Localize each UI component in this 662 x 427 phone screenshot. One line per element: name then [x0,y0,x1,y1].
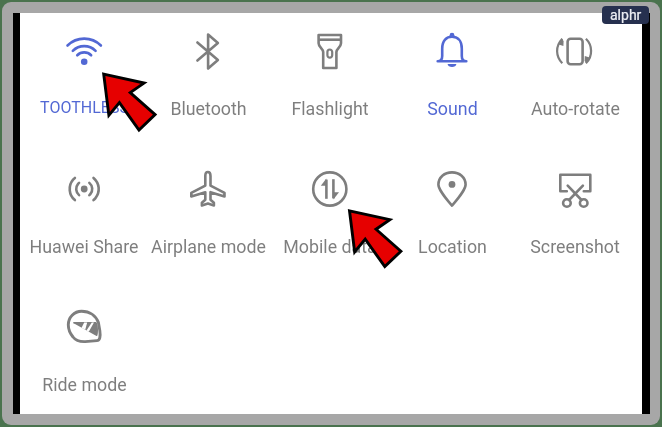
staticText: Flashlight [291,98,369,119]
staticText: TOOTHLESS [40,98,129,117]
button[interactable]: Airplane mode [146,147,269,265]
button[interactable]: alphr watermark [602,6,649,24]
staticText: Sound [427,98,478,119]
staticText: alphr [610,7,642,23]
button[interactable]: Flashlight [268,10,391,128]
button[interactable]: Bluetooth [146,10,269,128]
button[interactable]: Sound [391,10,514,128]
button[interactable]: Screenshot [514,147,637,265]
button[interactable]: TOOTHLESS [23,10,146,128]
button[interactable]: Ride mode [23,285,146,403]
button[interactable]: Huawei Share [23,147,146,265]
staticText: Airplane mode [151,236,266,257]
staticText: Location [418,236,487,257]
staticText: Auto-rotate [531,98,620,119]
button[interactable]: Mobile data [268,147,391,265]
staticText: Huawei Share [29,236,139,257]
staticText: Mobile data [283,236,377,257]
staticText: Screenshot [530,236,620,257]
button[interactable]: Auto-rotate [514,10,637,128]
button[interactable]: Location [391,147,514,265]
staticText: Ride mode [42,374,127,395]
staticText: Bluetooth [170,98,247,119]
